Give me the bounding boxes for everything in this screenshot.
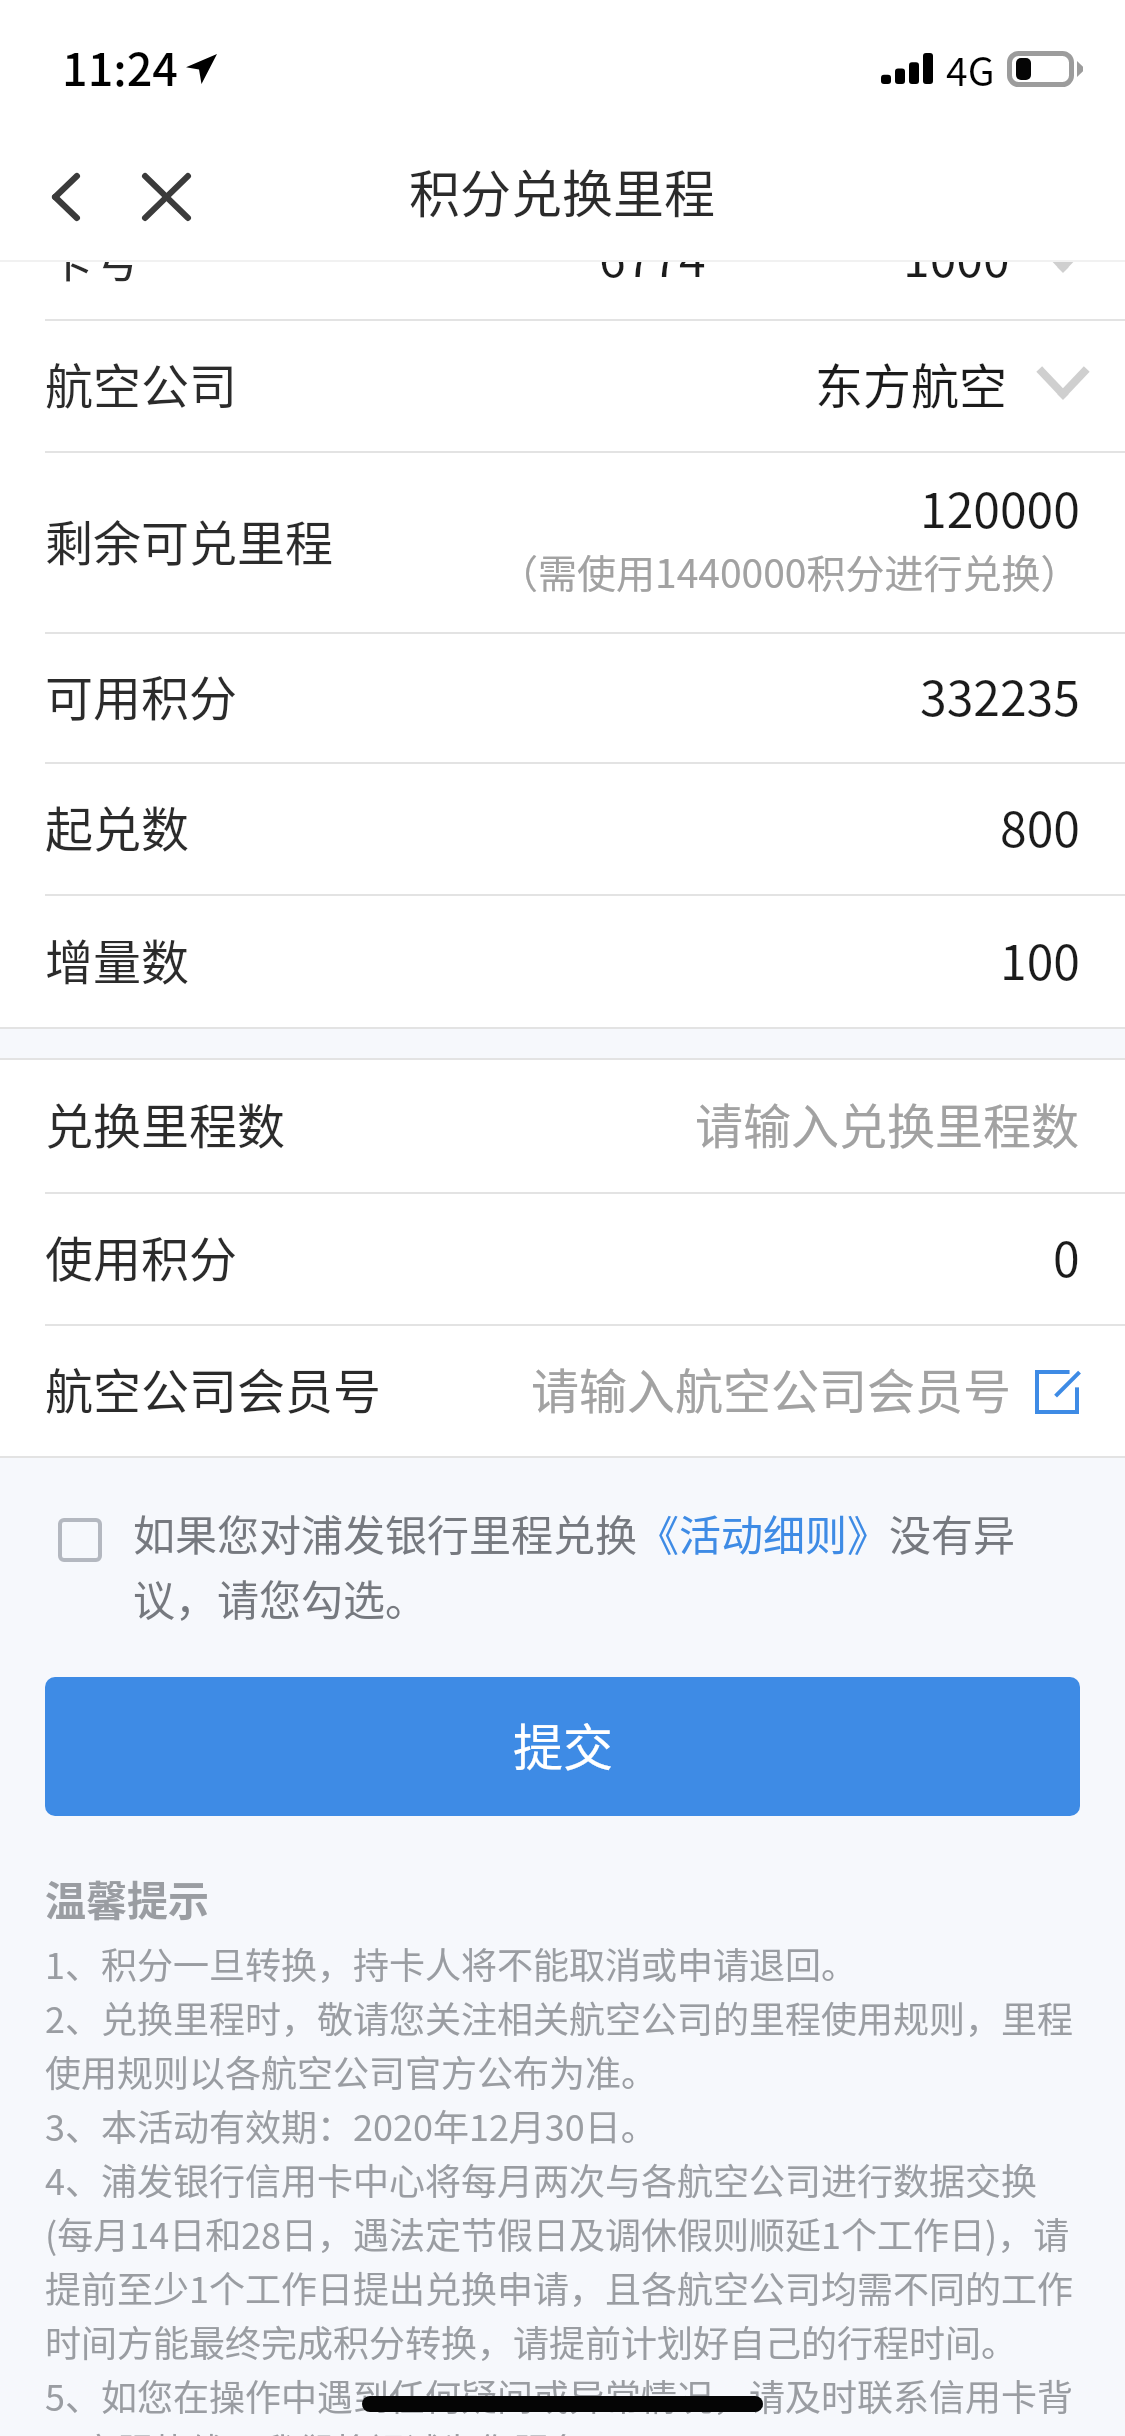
button[interactable]: 剩余可兑里程 [0, 453, 1125, 634]
button[interactable]: 可用积分 [0, 634, 1125, 764]
staticText: 航空公司会员号 [45, 1353, 382, 1423]
staticText: 起兑数 [45, 791, 190, 861]
staticText: 120000 [920, 472, 1080, 542]
staticText: 温馨提示 [45, 1868, 209, 1927]
staticText: 东方航空 [815, 348, 1008, 418]
staticText: 剩余可兑里程 [45, 505, 334, 575]
staticText: 800 [1000, 791, 1080, 861]
button[interactable]: 增量数 [0, 896, 1125, 1029]
button[interactable]: 使用积分 [0, 1194, 1125, 1326]
staticText: 兑换里程数 [45, 1088, 286, 1158]
staticText: 可用积分 [45, 660, 238, 730]
staticText: 1000 [903, 221, 1010, 291]
button[interactable]: Back [10, 132, 122, 262]
staticText: 请输入兑换里程数 [695, 1088, 1080, 1158]
staticText: 1、积分一旦转换，持卡人将不能取消或申请退回。 2、兑换里程时，敬请您关注相关航… [45, 1937, 1080, 2436]
staticText: 积分兑换里程 [409, 154, 716, 228]
staticText: 4G [946, 41, 995, 97]
staticText: 0 [1053, 1221, 1080, 1291]
button[interactable]: 提交 [45, 1677, 1080, 1816]
button[interactable]: 兑换里程数 [0, 1060, 1125, 1194]
button[interactable]: Close [110, 132, 222, 262]
button[interactable]: 起兑数 [0, 764, 1125, 896]
staticText: 航空公司 [45, 348, 238, 418]
staticText: 332235 [920, 660, 1080, 730]
staticText: 6774 [599, 221, 706, 291]
button[interactable]: 航空公司会员号 [0, 1326, 1125, 1458]
staticText: （需使用1440000积分进行兑换） [499, 543, 1080, 599]
staticText: 卡号 [45, 221, 142, 291]
staticText: 11:24 [62, 34, 179, 99]
button[interactable]: 如果您对浦发银行里程兑换《活动细则》没有异议，请您勾选。 [58, 1508, 1035, 1634]
staticText: 100 [1000, 924, 1080, 994]
staticText: 增量数 [45, 924, 190, 994]
staticText: 提交 [513, 1708, 613, 1780]
staticText: 请输入航空公司会员号 [531, 1353, 1012, 1423]
staticText: 如果您对浦发银行里程兑换《活动细则》没有异议，请您勾选。 [133, 1502, 1035, 1628]
button[interactable]: 航空公司 [0, 321, 1125, 453]
staticText: 使用积分 [45, 1221, 238, 1291]
button[interactable]: Edit member number [1030, 1363, 1080, 1413]
